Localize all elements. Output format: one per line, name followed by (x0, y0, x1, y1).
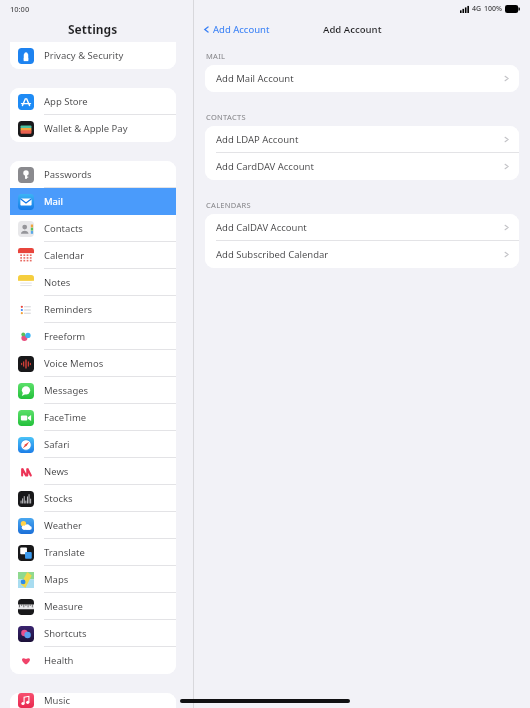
staticText: Freeform (44, 330, 86, 343)
staticText: Add Subscribed Calendar (216, 248, 329, 261)
staticText: Mail (44, 195, 63, 208)
staticText: MAIL (206, 51, 226, 61)
staticText: Health (44, 654, 74, 667)
button[interactable]: Music (10, 693, 176, 708)
button[interactable]: Weather (10, 512, 176, 539)
staticText: Notes (44, 276, 71, 289)
button[interactable]: News (10, 458, 176, 485)
button[interactable]: Voice Memos (10, 350, 176, 377)
staticText: 4G (472, 4, 482, 14)
staticText: Wallet & Apple Pay (44, 122, 128, 135)
staticText: Add CardDAV Account (216, 160, 314, 173)
button[interactable]: App Store (10, 88, 176, 115)
staticText: Privacy & Security (44, 49, 124, 62)
staticText: Weather (44, 519, 82, 532)
staticText: Maps (44, 573, 69, 586)
staticText: Measure (44, 600, 83, 613)
button[interactable]: Shortcuts (10, 620, 176, 647)
staticText: Add Account (213, 23, 270, 36)
button[interactable]: Calendar (10, 242, 176, 269)
staticText: Add LDAP Account (216, 133, 299, 146)
staticText: Calendar (44, 249, 85, 262)
staticText: FaceTime (44, 411, 87, 424)
staticText: Passwords (44, 168, 92, 181)
button[interactable]: Mail (10, 188, 176, 215)
button[interactable]: Reminders (10, 296, 176, 323)
button[interactable]: Add Account (201, 21, 272, 38)
button[interactable]: Add Subscribed Calendar (205, 241, 519, 268)
staticText: Shortcuts (44, 627, 87, 640)
button[interactable]: Wallet & Apple Pay (10, 115, 176, 142)
button[interactable]: Health (10, 647, 176, 674)
staticText: CALENDARS (206, 200, 251, 210)
button[interactable]: Privacy & Security (10, 42, 176, 69)
staticText: Music (44, 694, 71, 707)
button[interactable]: Maps (10, 566, 176, 593)
button[interactable]: Add CalDAV Account (205, 214, 519, 241)
button[interactable]: Translate (10, 539, 176, 566)
staticText: Safari (44, 438, 70, 451)
staticText: Add Mail Account (216, 72, 294, 85)
staticText: News (44, 465, 69, 478)
button[interactable]: Messages (10, 377, 176, 404)
staticText: Voice Memos (44, 357, 104, 370)
button[interactable]: Contacts (10, 215, 176, 242)
button[interactable]: Safari (10, 431, 176, 458)
staticText: Add Account (323, 23, 382, 36)
button[interactable]: Measure (10, 593, 176, 620)
staticText: Translate (44, 546, 85, 559)
button[interactable]: Add Mail Account (205, 65, 519, 92)
staticText: Stocks (44, 492, 73, 505)
staticText: 10:00 (10, 4, 30, 14)
button[interactable]: Add LDAP Account (205, 126, 519, 153)
button[interactable]: Freeform (10, 323, 176, 350)
staticText: Settings (68, 21, 118, 37)
staticText: CONTACTS (206, 112, 246, 122)
button[interactable]: Passwords (10, 161, 176, 188)
button[interactable]: FaceTime (10, 404, 176, 431)
button[interactable]: Add CardDAV Account (205, 153, 519, 180)
staticText: Add CalDAV Account (216, 221, 307, 234)
staticText: Messages (44, 384, 89, 397)
button[interactable]: Notes (10, 269, 176, 296)
button[interactable]: Stocks (10, 485, 176, 512)
staticText: 100% (484, 4, 502, 14)
staticText: Reminders (44, 303, 93, 316)
staticText: App Store (44, 95, 88, 108)
staticText: Contacts (44, 222, 83, 235)
